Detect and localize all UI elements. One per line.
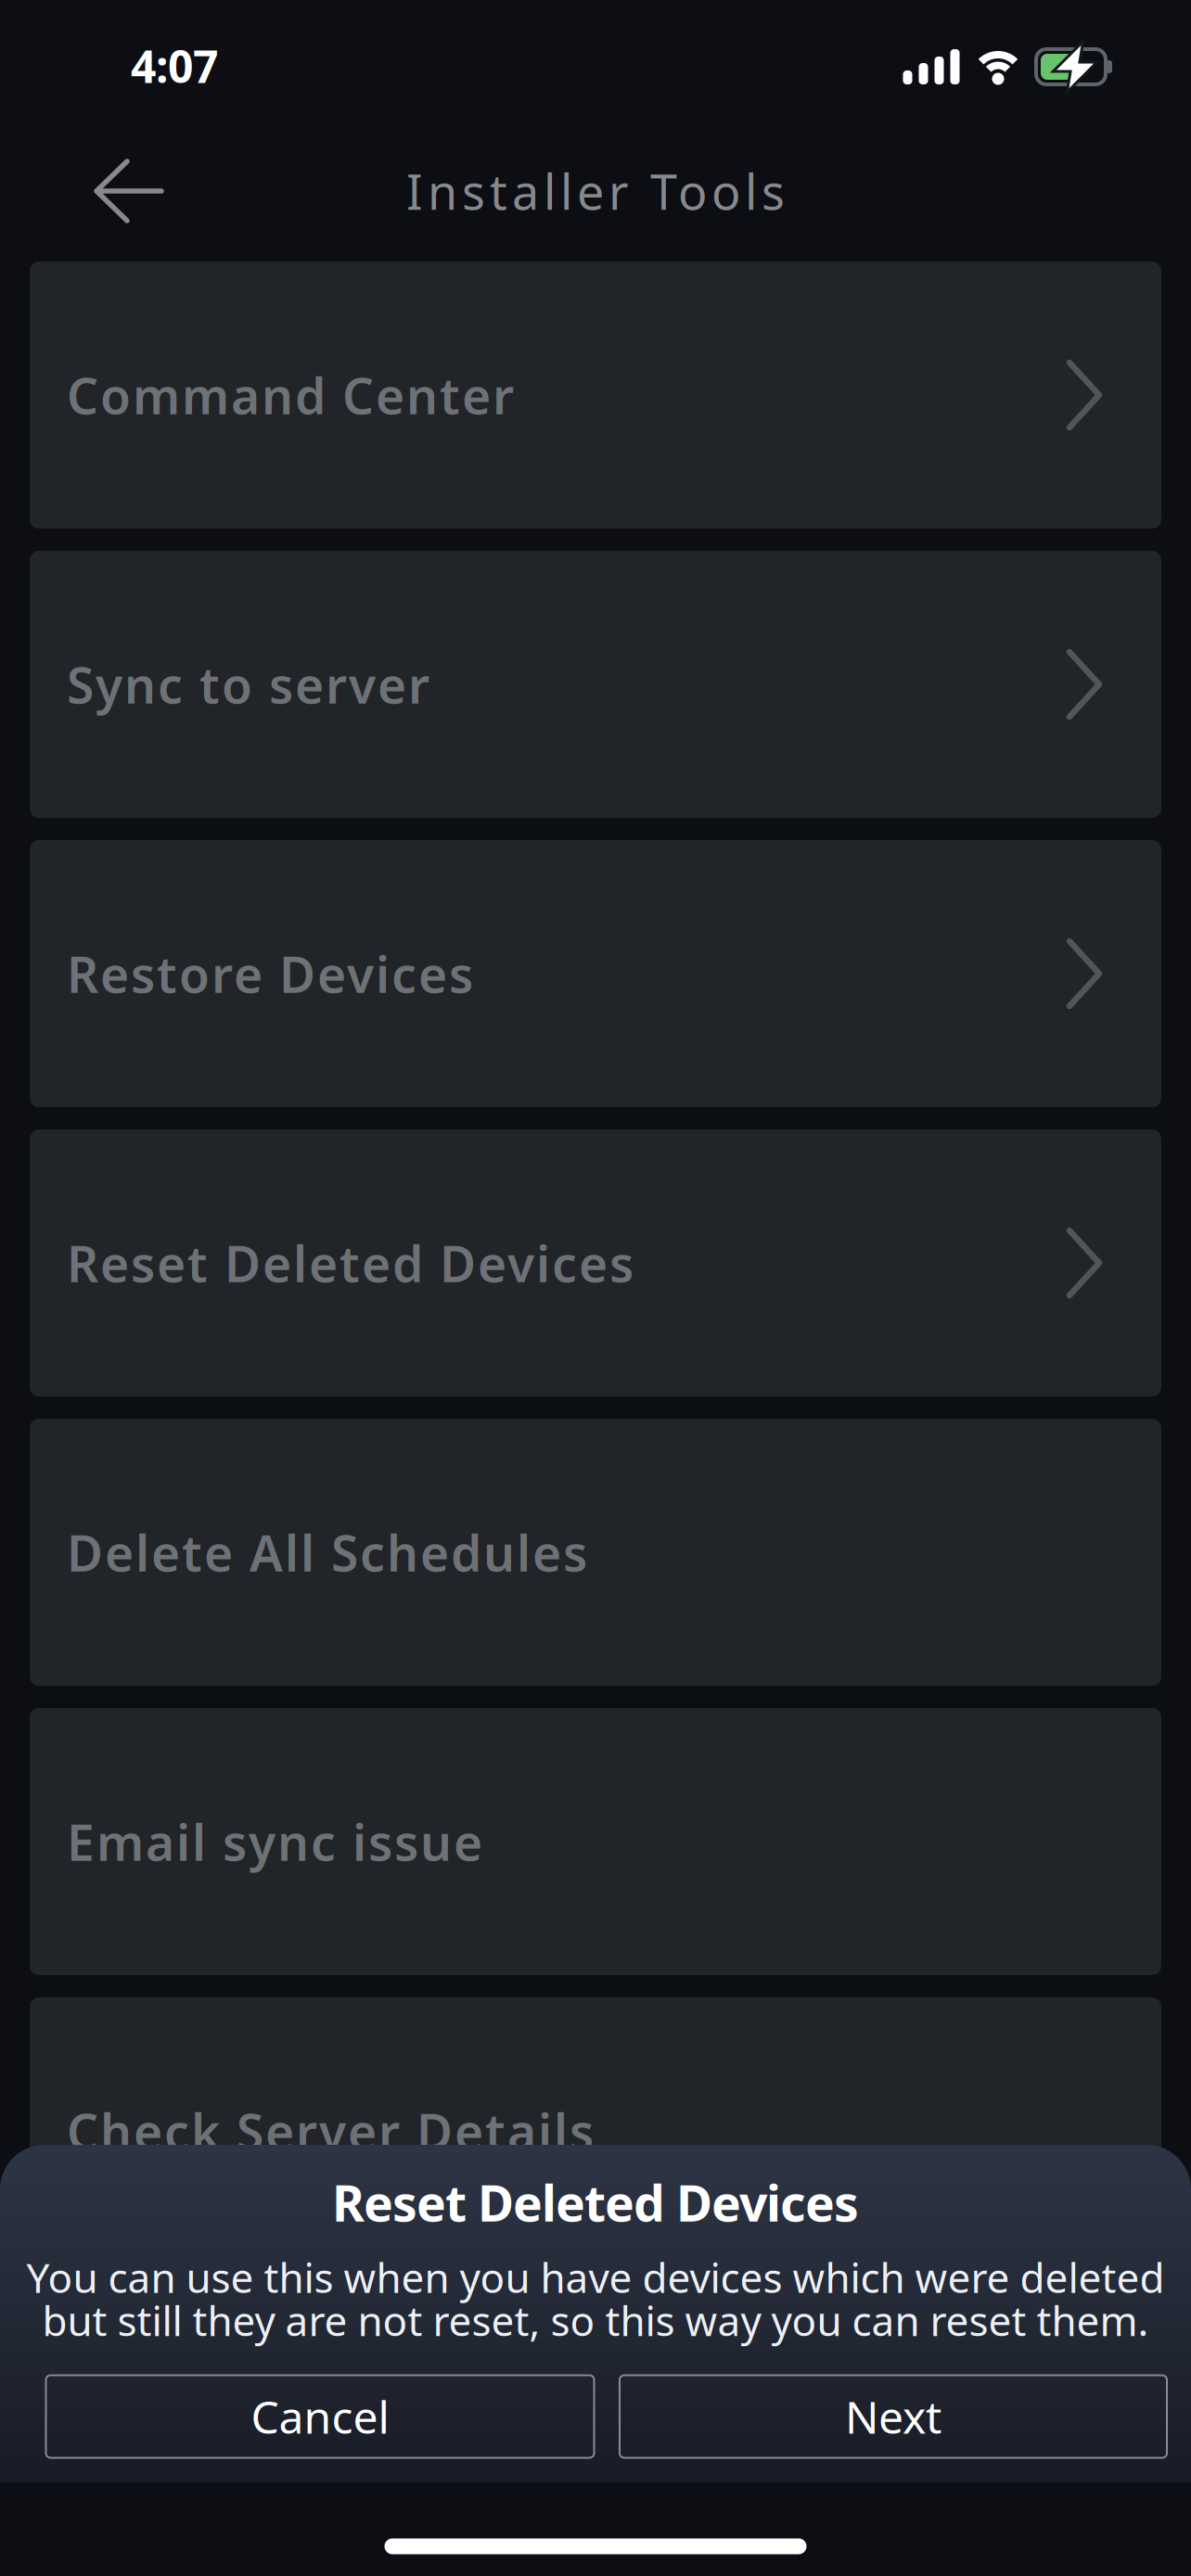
staticText: Next: [845, 2387, 941, 2446]
staticText: Reset Deleted Devices: [332, 2169, 859, 2235]
staticText: Delete All Schedules: [67, 1519, 587, 1585]
button[interactable]: Email sync issue: [30, 1708, 1161, 1975]
staticText: Cancel: [251, 2387, 389, 2446]
button[interactable]: Restore Devices: [30, 840, 1161, 1107]
staticText: Sync to server: [67, 652, 429, 717]
button[interactable]: Check Server Details: [30, 1997, 1161, 2264]
button[interactable]: Next: [620, 2375, 1167, 2458]
staticText: 4:07: [131, 36, 218, 95]
staticText: Command Center: [67, 362, 514, 428]
button[interactable]: Reset Deleted Devices: [30, 1129, 1161, 1396]
button[interactable]: Cancel: [46, 2375, 594, 2458]
staticText: Check Server Details: [67, 2098, 594, 2164]
button[interactable]: Back: [94, 159, 164, 223]
staticText: Email sync issue: [67, 1809, 482, 1874]
staticText: Restore Devices: [67, 941, 473, 1006]
button[interactable]: Delete All Schedules: [30, 1419, 1161, 1686]
button[interactable]: Sync to server: [30, 551, 1161, 818]
staticText: Reset Deleted Devices: [67, 1230, 634, 1296]
staticText: Installer Tools: [406, 159, 785, 223]
staticText: but still they are not reset, so this wa…: [42, 2293, 1149, 2347]
staticText: You can use this when you have devices w…: [26, 2250, 1165, 2304]
button[interactable]: Command Center: [30, 261, 1161, 529]
